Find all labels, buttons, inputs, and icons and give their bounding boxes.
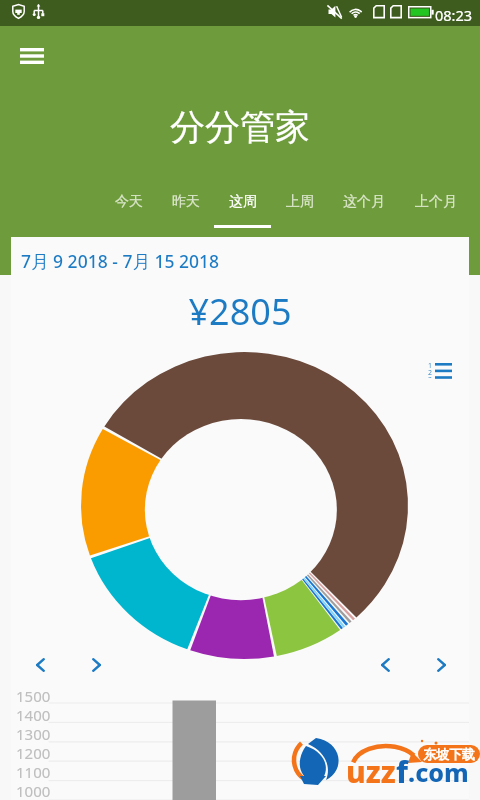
staticText: f bbox=[396, 751, 408, 792]
button[interactable]: 昨天 bbox=[157, 187, 214, 231]
staticText: 这周 bbox=[229, 193, 257, 211]
button[interactable]: Previous period bbox=[370, 650, 400, 680]
button[interactable]: Menu bbox=[8, 32, 56, 80]
staticText: 上个月 bbox=[415, 193, 457, 211]
staticText: 7月 9 2018 - 7月 15 2018 bbox=[21, 249, 220, 273]
button[interactable]: 上周 bbox=[271, 187, 328, 231]
button[interactable]: 今天 bbox=[100, 187, 157, 231]
staticText: 3 bbox=[428, 375, 433, 378]
staticText: 分分管家 bbox=[170, 105, 310, 149]
button[interactable]: 这个月 bbox=[328, 187, 400, 231]
staticText: 1100 bbox=[16, 762, 51, 781]
staticText: 这个月 bbox=[343, 193, 385, 211]
staticText: uzz bbox=[346, 751, 396, 792]
button[interactable]: 这周 bbox=[214, 187, 271, 231]
button[interactable]: Show legend bbox=[420, 351, 460, 391]
staticText: 1200 bbox=[16, 743, 51, 762]
button[interactable]: Next category bbox=[81, 650, 111, 680]
staticText: 1300 bbox=[16, 724, 51, 743]
button[interactable]: Previous category bbox=[25, 650, 55, 680]
button[interactable]: 上个月 bbox=[400, 187, 472, 231]
staticText: 2 bbox=[428, 368, 433, 375]
staticText: 1000 bbox=[16, 781, 51, 800]
staticText: 1500 bbox=[16, 686, 51, 705]
staticText: 08:23 bbox=[435, 5, 473, 25]
staticText: 昨天 bbox=[172, 193, 200, 211]
button[interactable]: Next period bbox=[426, 650, 456, 680]
staticText: ¥2805 bbox=[11, 287, 469, 336]
staticText: .com bbox=[408, 755, 469, 789]
staticText: 1400 bbox=[16, 705, 51, 724]
staticText: 今天 bbox=[115, 193, 143, 211]
staticText: 东坡下载 bbox=[423, 746, 475, 762]
staticText: 上周 bbox=[286, 193, 314, 211]
staticText: 1 bbox=[428, 361, 433, 368]
